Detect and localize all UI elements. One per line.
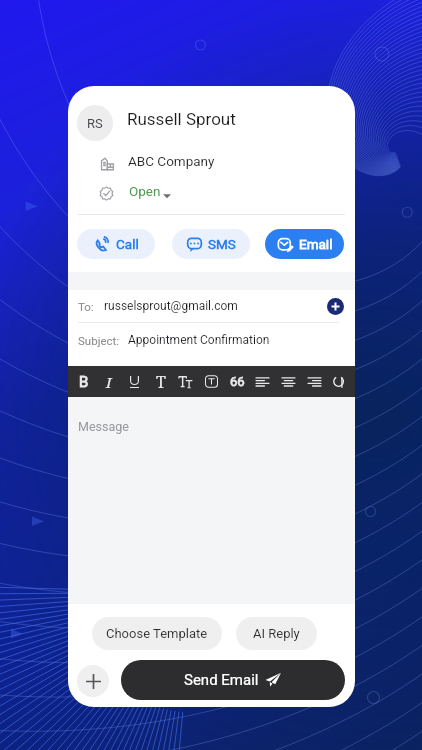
button[interactable]: Email [265,229,344,259]
staticText: SMS [208,236,236,252]
button[interactable]: Font size [175,366,196,397]
button[interactable]: SMS [172,229,250,259]
button[interactable]: AI Reply [236,617,317,650]
button[interactable]: Align center [278,366,299,397]
staticText: russelsprout@gmail.com [104,299,238,313]
button[interactable]: Add recipient [327,298,344,315]
staticText: Appointment Confirmation [128,333,270,347]
staticText: B [79,373,89,391]
staticText: T [156,371,166,393]
button[interactable]: Send Email [121,660,345,700]
staticText: RS [87,116,103,131]
staticText: Email [299,236,333,252]
button[interactable]: To: [68,290,355,322]
button[interactable]: Underline [124,366,145,397]
button[interactable]: Call [77,229,155,259]
button[interactable]: Bold [73,366,94,397]
staticText: Call [116,236,139,252]
staticText: Open [129,183,161,199]
staticText: Send Email [184,671,259,689]
button[interactable]: Align left [252,366,273,397]
staticText: Message [78,419,129,434]
button[interactable]: Italic [98,366,119,397]
staticText: Subject: [78,334,120,347]
button[interactable]: Align right [304,366,325,397]
staticText: Russell Sprout [127,109,236,129]
staticText: I [106,372,112,392]
staticText: AI Reply [253,626,300,641]
staticText: Choose Template [106,626,208,641]
staticText: 66 [230,374,245,389]
button[interactable]: Choose Template [92,617,222,650]
button[interactable]: Text box [201,366,222,397]
button[interactable]: Add attachment [77,665,109,697]
staticText: ABC Company [128,153,215,169]
staticText: To: [78,300,94,313]
button[interactable]: Attach [329,366,350,397]
button[interactable]: Subject: [68,323,355,357]
button[interactable]: Font [150,366,171,397]
button[interactable]: Quote [227,366,248,397]
